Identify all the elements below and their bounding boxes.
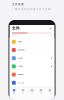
staticText: 浏览 bbox=[13, 92, 15, 93]
button[interactable]: 照片与图库 bbox=[10, 54, 54, 62]
button[interactable]: 共享 bbox=[27, 89, 36, 93]
staticText: 共享 bbox=[31, 92, 33, 93]
staticText: 文件 bbox=[12, 26, 20, 31]
staticText: 文件管理 bbox=[12, 3, 24, 6]
staticText: 下载项目 bbox=[18, 41, 22, 43]
staticText: 一键管理你的所有文件与文稿 bbox=[12, 7, 51, 11]
button[interactable]: iCloud 云盘 bbox=[10, 79, 54, 87]
staticText: 共 128 GB bbox=[46, 35, 52, 36]
button[interactable]: 音乐与播客 bbox=[10, 62, 54, 70]
button[interactable]: 下载项目 bbox=[10, 38, 54, 46]
button[interactable]: 收藏 bbox=[36, 89, 45, 93]
staticText: 音乐与播客 bbox=[18, 66, 23, 67]
staticText: 已用 32 GB bbox=[12, 35, 18, 36]
staticText: 我的文稿与表格 bbox=[18, 49, 25, 51]
button[interactable]: 浏览 bbox=[10, 89, 19, 93]
staticText: 收藏 bbox=[40, 92, 42, 93]
button[interactable]: 我的文稿与表格 bbox=[10, 46, 54, 54]
staticText: iCloud 云盘 bbox=[18, 82, 24, 84]
staticText: 照片与图库 bbox=[18, 57, 23, 59]
button[interactable]: 我的 bbox=[45, 89, 54, 93]
staticText: 最近 bbox=[22, 92, 24, 93]
button[interactable]: 视频影集归档 bbox=[10, 70, 54, 79]
staticText: 视频影集归档 bbox=[18, 74, 24, 75]
staticText: 我的 bbox=[49, 92, 51, 93]
button[interactable]: More bbox=[49, 27, 52, 30]
button[interactable]: 最近 bbox=[19, 89, 28, 93]
